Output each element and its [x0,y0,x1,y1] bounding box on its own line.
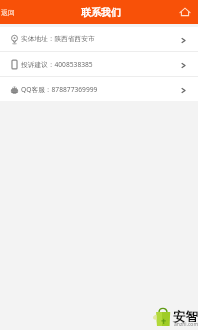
staticText: 安智 [173,309,198,325]
staticText: 实体地址：陕西省西安市 [21,35,95,43]
staticText: 联系我们 [81,6,121,19]
staticText: anzhi.com [174,321,198,328]
staticText: 投诉建议：4008538385 [21,60,93,69]
button[interactable]: Home [179,6,191,18]
button[interactable]: 投诉建议：4008538385 [0,52,198,76]
staticText: 返回 [1,8,15,17]
button[interactable]: QQ客服：878877369999 [0,77,198,101]
button[interactable]: 返回 [0,4,18,21]
button[interactable]: 实体地址：陕西省西安市 [0,27,198,51]
staticText: QQ客服：878877369999 [21,85,98,94]
